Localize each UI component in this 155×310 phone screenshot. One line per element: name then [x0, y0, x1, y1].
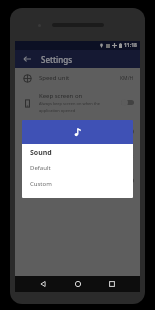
staticText: Sound: [39, 152, 58, 160]
staticText: 11:18: [124, 42, 137, 49]
staticText: Enable warning even when exiting the app…: [39, 179, 111, 191]
staticText: KM/H: [120, 75, 134, 82]
staticText: Sound: [30, 148, 52, 158]
button[interactable]: Back: [36, 277, 50, 291]
button[interactable]: Toggle: [121, 128, 134, 135]
button[interactable]: Custom: [30, 180, 133, 188]
button[interactable]: Toggle: [121, 99, 134, 106]
button[interactable]: Speed warning: [15, 117, 140, 146]
button[interactable]: Sound: [15, 146, 140, 166]
staticText: Always keep screen on when the applicati…: [39, 101, 101, 113]
staticText: Keep screen on: [39, 92, 83, 100]
button[interactable]: Back: [21, 53, 33, 65]
button[interactable]: Toggle: [121, 177, 134, 184]
button[interactable]: Default: [30, 164, 133, 172]
staticText: Speed unit: [39, 74, 70, 82]
staticText: Custom: [30, 180, 52, 188]
staticText: Settings: [41, 54, 73, 65]
button[interactable]: Speed unit: [15, 68, 140, 88]
button[interactable]: Home: [71, 277, 85, 291]
button[interactable]: Keep screen on: [15, 88, 140, 117]
button[interactable]: Recents: [105, 277, 119, 291]
staticText: Default: [30, 164, 51, 172]
button[interactable]: Background warning: [15, 166, 140, 195]
staticText: The device will ringing when the speed e…: [39, 130, 112, 142]
staticText: Speed warning: [39, 121, 82, 129]
staticText: Default: [116, 153, 134, 160]
